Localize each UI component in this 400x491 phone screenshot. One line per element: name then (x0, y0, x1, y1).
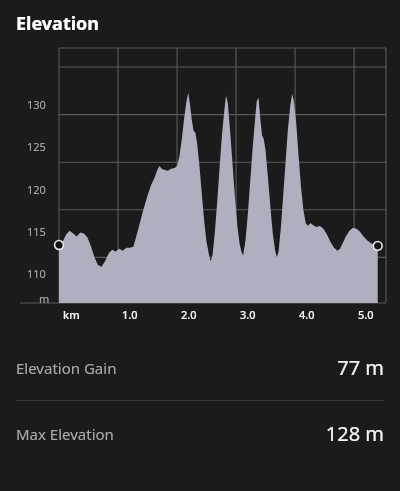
staticText: 77 m (337, 354, 384, 381)
button[interactable]: Elevation Gain (0, 335, 400, 400)
staticText: 5.0 (358, 307, 374, 322)
staticText: 4.0 (299, 307, 315, 322)
staticText: 128 m (325, 420, 384, 447)
staticText: Elevation Gain (16, 358, 117, 378)
staticText: Max Elevation (16, 424, 114, 444)
staticText: 3.0 (240, 307, 256, 322)
button[interactable]: Max Elevation (0, 401, 400, 466)
staticText: 130 (27, 97, 46, 112)
staticText: 120 (27, 182, 46, 197)
staticText: Elevation (16, 11, 100, 36)
staticText: km (63, 307, 80, 322)
staticText: 2.0 (181, 307, 197, 322)
staticText: 115 (27, 224, 46, 239)
staticText: 1.0 (122, 307, 138, 322)
staticText: m (39, 291, 50, 306)
staticText: 110 (27, 266, 46, 281)
staticText: 125 (27, 139, 46, 154)
